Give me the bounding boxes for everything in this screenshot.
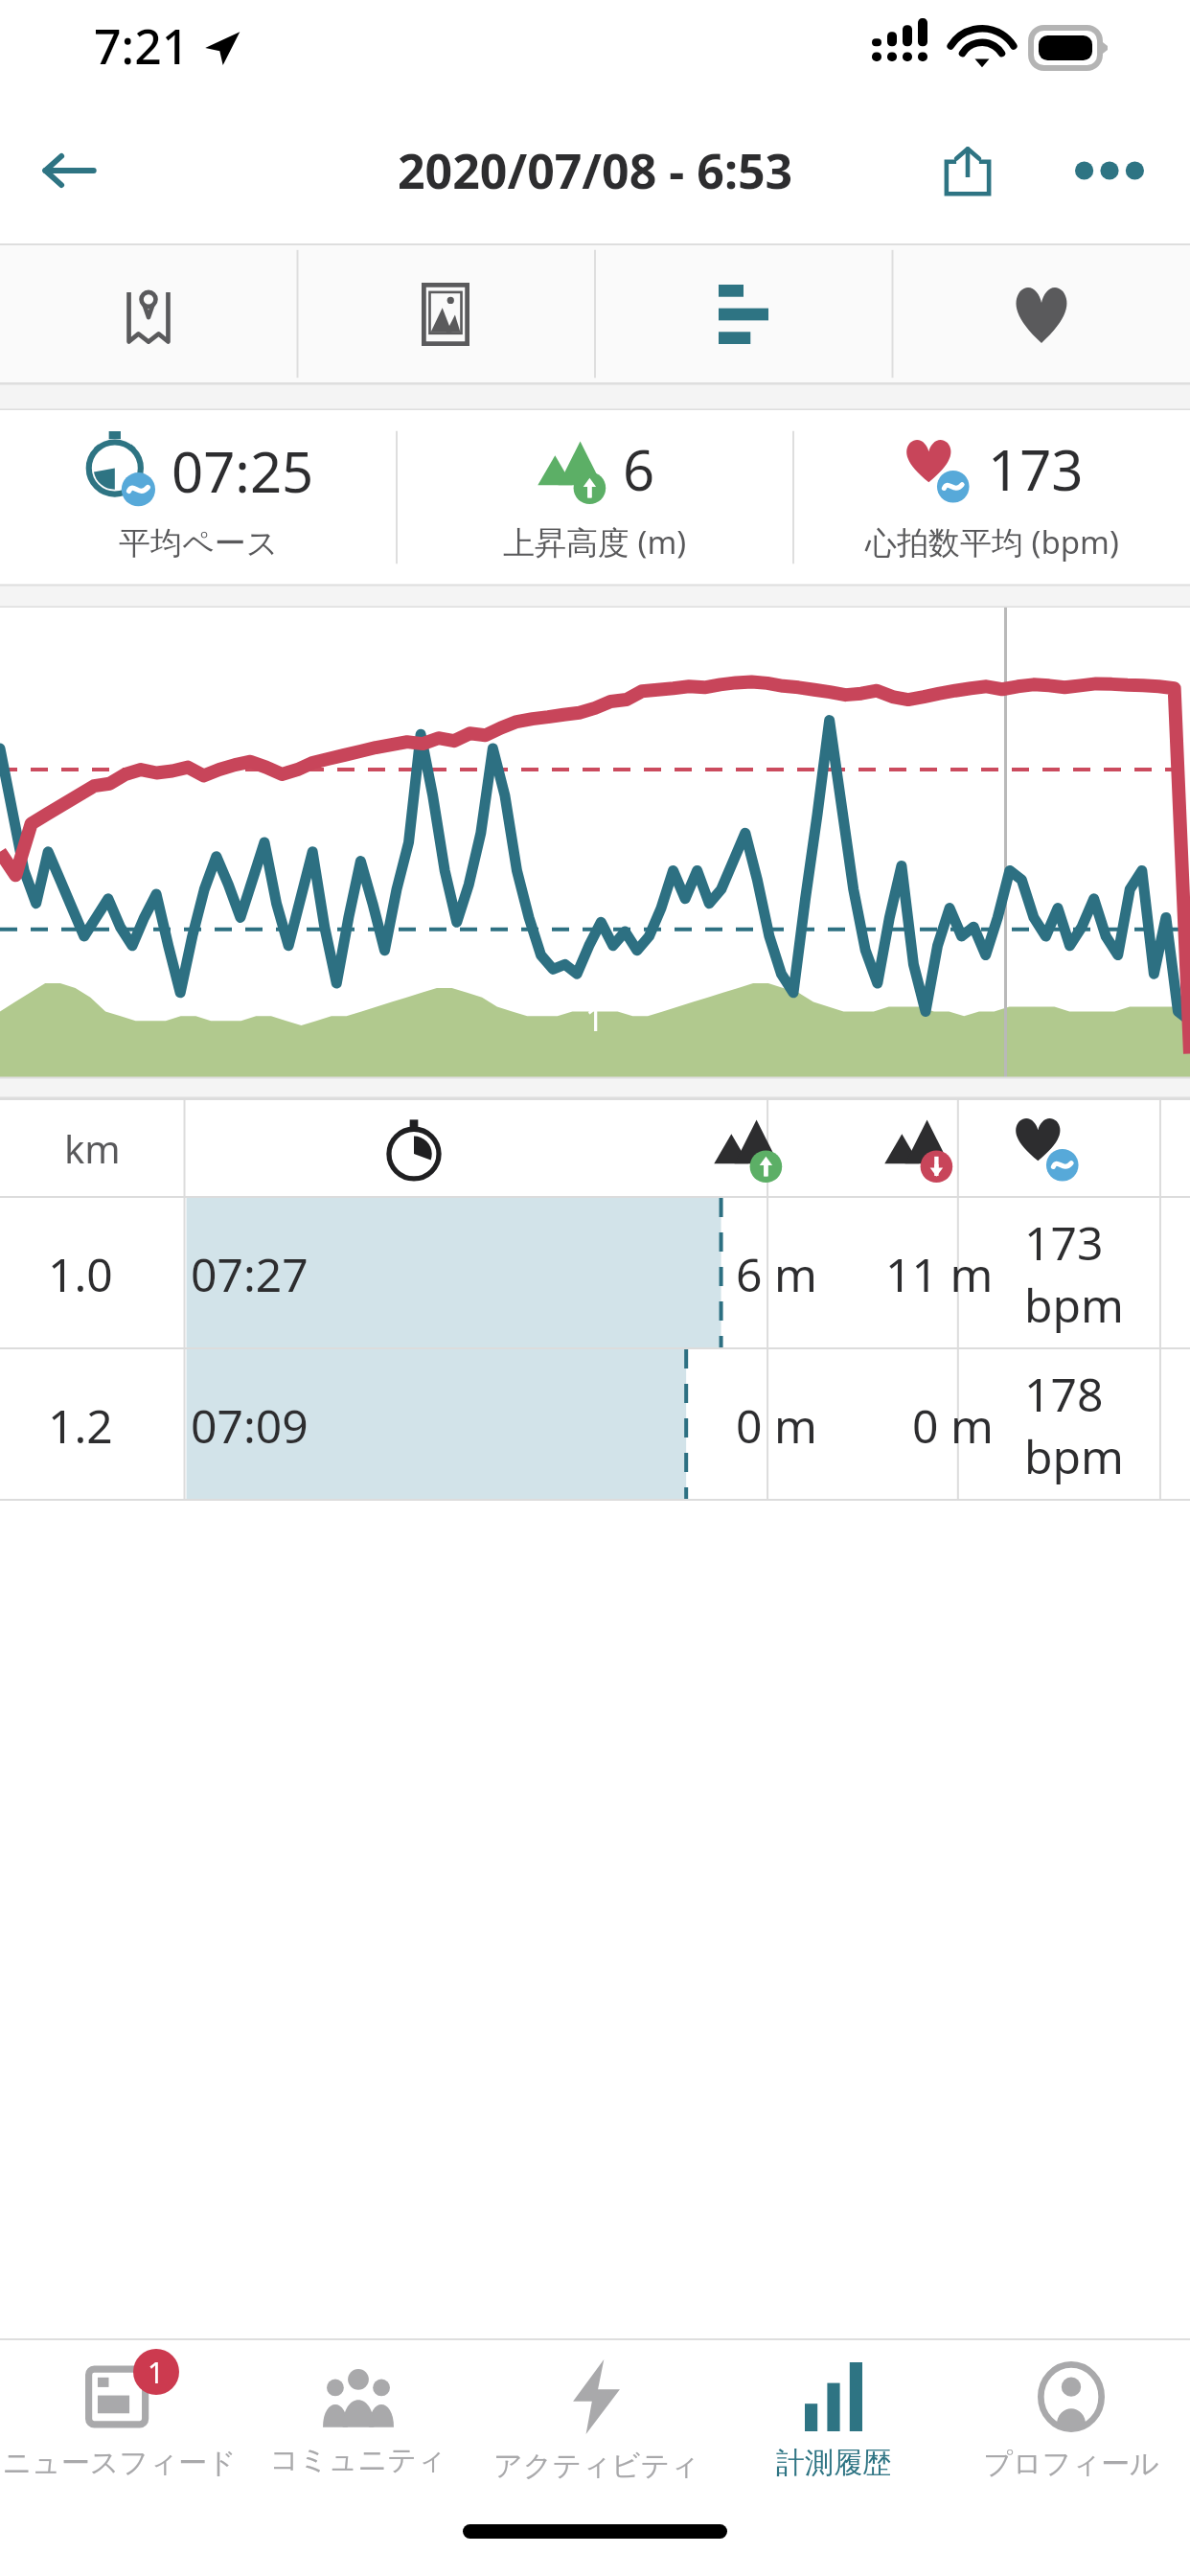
staticText: 07:25 [172,433,314,509]
button[interactable]: コミュニティ [239,2340,477,2503]
staticText: 1.0 [48,1243,113,1305]
staticText: 178 bpm [1024,1363,1190,1487]
staticText: 心拍数平均 (bpm) [865,520,1119,563]
button[interactable]: プロフィール [952,2340,1190,2503]
staticText: ニュースフィード [2,2445,237,2481]
button[interactable]: 1.2 [0,1349,1190,1501]
staticText: アクティビティ [493,2448,699,2484]
button[interactable]: 1 [0,608,1190,1077]
button[interactable]: 1 [0,2340,239,2503]
button[interactable]: More options [1064,125,1156,217]
staticText: 計測履歴 [776,2445,891,2481]
button[interactable]: 07:25 [0,410,397,585]
button[interactable]: Charts [594,244,892,383]
staticText: 7:21 [94,13,190,79]
button[interactable]: 6 [397,410,793,585]
staticText: 1.2 [48,1394,113,1457]
staticText: コミュニティ [269,2442,446,2478]
staticText: 1 [585,997,605,1041]
button[interactable]: 173 [793,410,1190,585]
staticText: 11 m [885,1243,994,1305]
button[interactable]: Heart rate [892,244,1190,383]
button[interactable]: 計測履歴 [715,2340,952,2503]
staticText: 平均ペース [119,523,279,563]
button[interactable]: Photos [297,244,594,383]
staticText: 6 m [736,1243,817,1305]
staticText: 6 [623,431,655,507]
staticText: プロフィール [983,2446,1159,2482]
staticText: 2020/07/08 - 6:53 [398,138,793,203]
button[interactable]: Map [0,244,297,383]
button[interactable]: Share [922,125,1014,217]
button[interactable]: Back [23,125,115,217]
staticText: 07:27 [191,1243,309,1305]
staticText: 07:09 [191,1394,309,1457]
staticText: 0 m [736,1394,817,1457]
staticText: 0 m [912,1394,994,1457]
staticText: 上昇高度 (m) [503,520,687,563]
staticText: km [64,1122,121,1174]
staticText: 1 [148,2353,165,2392]
staticText: 173 [988,431,1084,507]
button[interactable]: アクティビティ [477,2340,715,2503]
staticText: 173 bpm [1024,1211,1190,1336]
button[interactable]: 1.0 [0,1198,1190,1349]
